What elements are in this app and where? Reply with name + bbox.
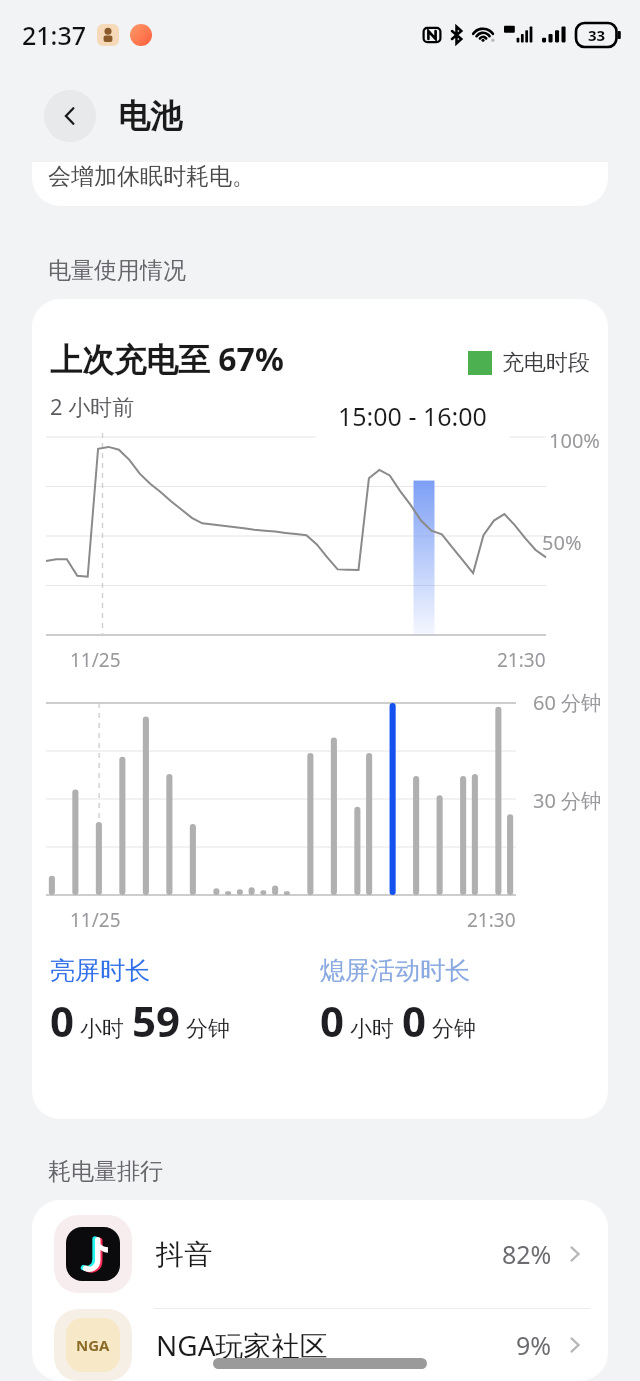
staticText: 11/25 — [70, 907, 121, 933]
staticText: 21:30 — [497, 647, 546, 673]
staticText: 0 — [320, 992, 345, 1049]
button[interactable]: 会增加休眠时耗电。 — [32, 162, 608, 206]
staticText: 小时 — [80, 1015, 124, 1043]
staticText: 33 — [588, 25, 606, 45]
staticText: 11/25 — [70, 647, 121, 673]
staticText: 60 分钟 — [533, 689, 602, 716]
staticText: 分钟 — [432, 1015, 476, 1043]
staticText: 充电时段 — [502, 349, 590, 377]
staticText: 会增加休眠时耗电。 — [48, 162, 255, 191]
staticText: 0 — [50, 992, 75, 1049]
button[interactable]: 返回 — [44, 90, 96, 142]
staticText: 2 小时前 — [50, 391, 135, 421]
staticText: 15:00 - 16:00 — [338, 399, 487, 433]
staticText: 小时 — [350, 1015, 394, 1043]
staticText: 9% — [516, 1328, 552, 1362]
staticText: 0 — [402, 992, 427, 1049]
staticText: 上次充电至 67% — [50, 337, 284, 381]
staticText: 59 — [132, 992, 181, 1049]
staticText: 耗电量排行 — [48, 1157, 163, 1186]
staticText: 亮屏时长 — [50, 955, 150, 986]
staticText: 电池 — [118, 96, 182, 136]
button[interactable]: NGA — [32, 1309, 608, 1381]
staticText: NGA玩家社区 — [156, 1326, 516, 1364]
staticText: 电量使用情况 — [48, 256, 186, 285]
staticText: 82% — [502, 1237, 552, 1271]
staticText: NGA — [76, 1335, 110, 1355]
button[interactable]: 上次充电至 67% — [32, 299, 608, 1119]
staticText: 抖音 — [156, 1237, 502, 1272]
staticText: 21:37 — [22, 18, 87, 52]
staticText: 30 分钟 — [533, 787, 602, 814]
staticText: 100% — [549, 427, 600, 454]
staticText: 熄屏活动时长 — [320, 955, 470, 986]
button[interactable]: 抖音 — [32, 1200, 608, 1308]
staticText: 21:30 — [467, 907, 516, 933]
staticText: 50% — [542, 529, 582, 556]
staticText: 分钟 — [186, 1015, 230, 1043]
